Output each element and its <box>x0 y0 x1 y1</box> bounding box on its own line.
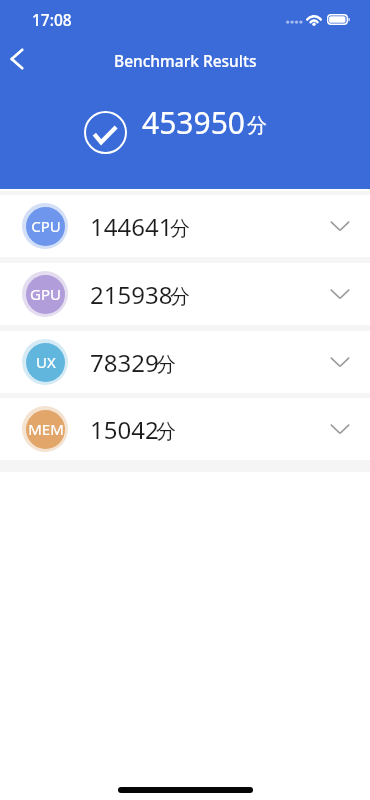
staticText: 分 <box>247 113 267 138</box>
staticText: 分 <box>170 216 190 241</box>
button[interactable]: Expand <box>320 409 360 449</box>
button[interactable]: UX <box>0 331 370 393</box>
staticText: 分 <box>156 419 176 444</box>
button[interactable]: Expand <box>320 274 360 314</box>
button[interactable]: MEM <box>0 398 370 460</box>
staticText: 分 <box>156 352 176 377</box>
button[interactable]: Expand <box>320 342 360 382</box>
staticText: 分 <box>170 284 190 309</box>
staticText: 215938 <box>90 278 173 311</box>
staticText: UX <box>36 352 56 372</box>
staticText: 15042 <box>90 413 159 446</box>
staticText: CPU <box>31 216 61 236</box>
button[interactable]: GPU <box>0 263 370 325</box>
staticText: MEM <box>28 419 64 439</box>
staticText: GPU <box>30 284 61 304</box>
staticText: 78329 <box>90 346 159 379</box>
button[interactable]: CPU <box>0 195 370 257</box>
staticText: Benchmark Results <box>114 50 257 71</box>
button[interactable]: Back <box>1 43 33 75</box>
staticText: 144641 <box>90 210 173 243</box>
staticText: 17:08 <box>32 9 72 30</box>
button[interactable]: Expand <box>320 206 360 246</box>
staticText: 453950 <box>142 102 245 143</box>
